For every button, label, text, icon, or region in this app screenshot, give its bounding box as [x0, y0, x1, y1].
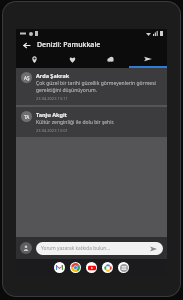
- button[interactable]: Chrome: [70, 262, 81, 273]
- button[interactable]: Favorites: [53, 52, 91, 66]
- staticText: Yorum yazarak katkıda bulun...: [41, 245, 149, 252]
- staticText: Çok güzel bir tarihi güzellik görmeyenle…: [36, 80, 162, 94]
- button[interactable]: Photos: [102, 262, 113, 273]
- staticText: AŞ: [24, 75, 30, 81]
- button[interactable]: Back: [20, 39, 32, 51]
- button[interactable]: AŞ: [16, 68, 167, 105]
- button[interactable]: Send: [149, 244, 158, 253]
- button[interactable]: Messages: [129, 52, 167, 66]
- button[interactable]: More: [118, 262, 129, 273]
- button[interactable]: Location: [16, 52, 53, 66]
- staticText: Arda Şakrak: [36, 72, 70, 79]
- staticText: Kültür zenginliği ile dolu bir şehir.: [36, 119, 115, 126]
- button[interactable]: Gmail: [54, 262, 65, 273]
- button[interactable]: YouTube: [86, 262, 97, 273]
- staticText: Denizli: Pamukkale: [37, 40, 101, 50]
- staticText: 23.04.2023 13:11: [36, 96, 68, 101]
- staticText: Tanju Akgit: [36, 111, 67, 118]
- button[interactable]: TA: [16, 107, 167, 137]
- staticText: TA: [24, 114, 30, 120]
- button[interactable]: Profile: [20, 242, 32, 254]
- staticText: 23.04.2023 13:01: [36, 128, 68, 133]
- button[interactable]: Yorum yazarak katkıda bulun...: [36, 242, 163, 255]
- button[interactable]: Photos: [91, 52, 129, 66]
